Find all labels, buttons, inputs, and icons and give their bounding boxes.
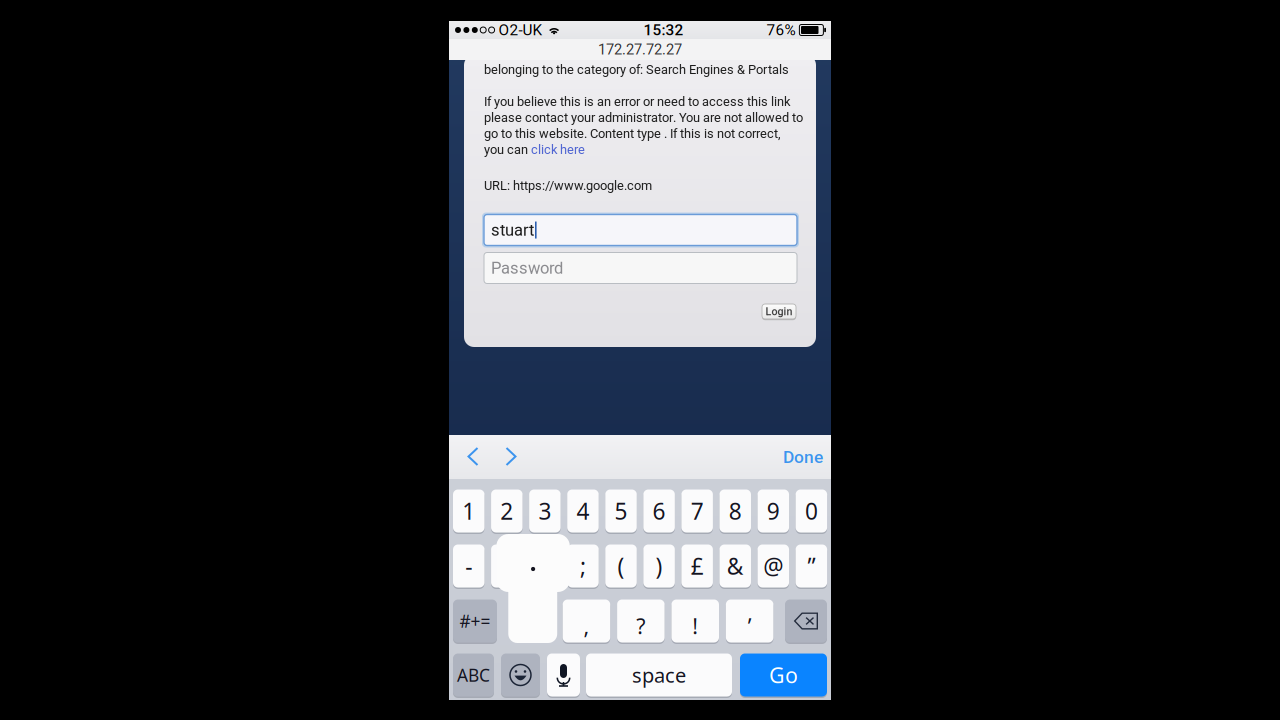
button[interactable]: @ bbox=[449, 479, 831, 700]
button[interactable]: 1 bbox=[449, 479, 831, 700]
staticText: 3 bbox=[538, 496, 551, 526]
staticText: belonging to the category of: Search Eng… bbox=[484, 62, 789, 77]
staticText: 5 bbox=[614, 496, 627, 526]
staticText: 6 bbox=[653, 496, 666, 526]
staticText: ( bbox=[617, 551, 624, 581]
staticText: Login bbox=[765, 305, 792, 318]
button[interactable]: Go bbox=[449, 479, 831, 700]
button[interactable]: ! bbox=[449, 479, 831, 700]
staticText: 2 bbox=[500, 496, 513, 526]
button[interactable]: 9 bbox=[449, 479, 831, 700]
staticText: £ bbox=[691, 551, 704, 581]
button[interactable]: 3 bbox=[449, 479, 831, 700]
button[interactable]: ) bbox=[449, 479, 831, 700]
staticText: Go bbox=[769, 661, 798, 689]
button[interactable]: 2 bbox=[449, 479, 831, 700]
button[interactable]: 8 bbox=[449, 479, 831, 700]
staticText: & bbox=[727, 551, 744, 581]
button[interactable]: - bbox=[449, 479, 831, 700]
staticText: , bbox=[583, 612, 589, 640]
button[interactable]: Login bbox=[464, 55, 816, 347]
button[interactable]: ; bbox=[449, 479, 831, 700]
staticText: - bbox=[465, 551, 472, 581]
button[interactable]: click here bbox=[531, 142, 585, 157]
staticText: ’ bbox=[748, 612, 752, 640]
staticText: ; bbox=[580, 551, 586, 581]
button[interactable]: £ bbox=[449, 479, 831, 700]
staticText: ! bbox=[692, 612, 698, 640]
button[interactable]: 6 bbox=[449, 479, 831, 700]
button[interactable]: ” bbox=[449, 479, 831, 700]
staticText: space bbox=[632, 662, 686, 688]
staticText: 0 bbox=[805, 496, 818, 526]
staticText: ABC bbox=[457, 663, 490, 686]
staticText: URL: https://www.google.com bbox=[484, 178, 652, 193]
button[interactable]: Delete bbox=[449, 479, 831, 700]
button[interactable]: Next field bbox=[492, 435, 530, 479]
button[interactable]: Dictation bbox=[449, 479, 831, 700]
staticText: ” bbox=[807, 551, 815, 581]
button[interactable]: 5 bbox=[449, 479, 831, 700]
staticText: click here bbox=[531, 142, 585, 157]
staticText: 9 bbox=[767, 496, 780, 526]
staticText: ? bbox=[636, 612, 645, 640]
button[interactable]: space bbox=[449, 479, 831, 700]
staticText: 172.27.72.27 bbox=[598, 41, 682, 58]
staticText: @ bbox=[763, 551, 783, 581]
button[interactable]: ? bbox=[449, 479, 831, 700]
staticText: 7 bbox=[691, 496, 704, 526]
staticText: please contact your administrator. You a… bbox=[484, 110, 803, 125]
button[interactable]: . bbox=[449, 479, 831, 700]
button[interactable]: 0 bbox=[449, 479, 831, 700]
button[interactable]: #+= bbox=[449, 479, 831, 700]
staticText: you can bbox=[484, 142, 531, 157]
staticText: stuart bbox=[491, 220, 534, 240]
button[interactable]: Previous field bbox=[454, 435, 492, 479]
staticText: #+= bbox=[459, 609, 490, 632]
staticText: O2-UK bbox=[499, 21, 543, 39]
staticText: go to this website. Content type . If th… bbox=[484, 126, 781, 141]
staticText: 15:32 bbox=[643, 21, 683, 39]
button[interactable]: 4 bbox=[449, 479, 831, 700]
button[interactable]: & bbox=[449, 479, 831, 700]
button[interactable]: Done bbox=[779, 435, 827, 479]
button[interactable]: Emoji bbox=[449, 479, 831, 700]
button[interactable]: ’ bbox=[449, 479, 831, 700]
staticText: If you believe this is an error or need … bbox=[484, 94, 790, 109]
staticText: Done bbox=[783, 447, 823, 467]
staticText: ) bbox=[656, 551, 663, 581]
staticText: 4 bbox=[576, 496, 589, 526]
staticText: 76% bbox=[766, 21, 795, 39]
button[interactable]: ABC bbox=[449, 479, 831, 700]
staticText: 1 bbox=[462, 496, 475, 526]
staticText: Password bbox=[491, 258, 563, 278]
button[interactable]: , bbox=[449, 479, 831, 700]
button[interactable]: 7 bbox=[449, 479, 831, 700]
button[interactable]: ( bbox=[449, 479, 831, 700]
staticText: 8 bbox=[729, 496, 742, 526]
